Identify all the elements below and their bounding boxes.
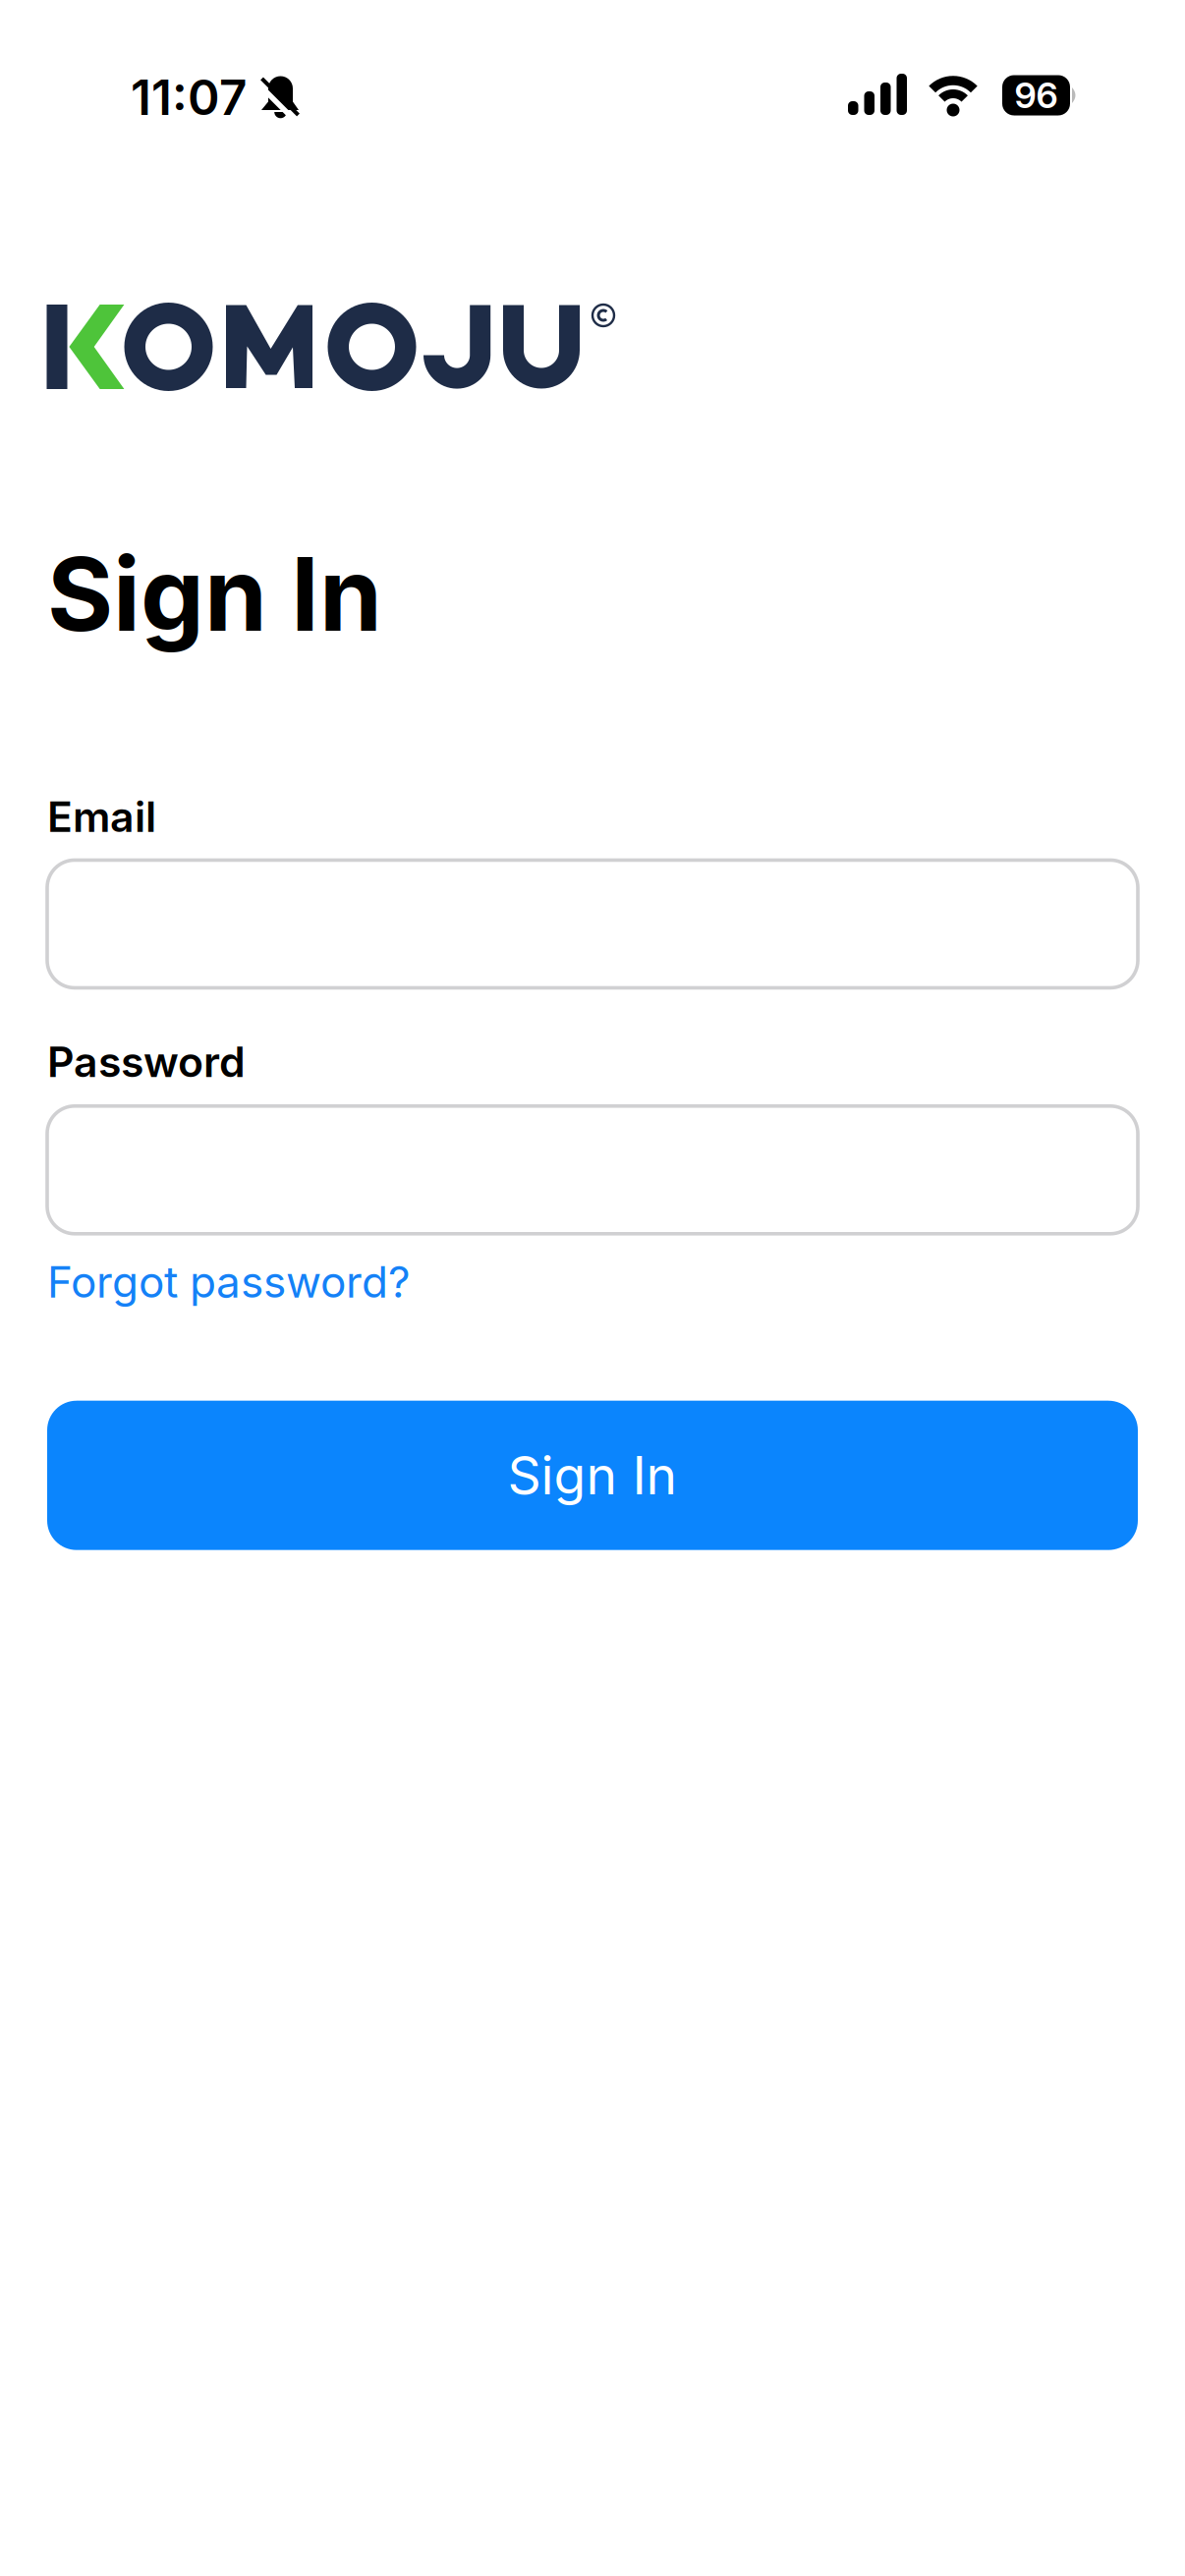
- staticText: 96: [1015, 74, 1058, 116]
- button[interactable]: Forgot password?: [47, 1256, 410, 1307]
- staticText: Forgot password?: [47, 1256, 410, 1307]
- staticText: Password: [47, 1037, 246, 1086]
- button[interactable]: Sign In: [47, 1401, 1138, 1550]
- staticText: Sign In: [47, 534, 382, 653]
- staticText: Sign In: [508, 1444, 677, 1506]
- staticText: 11:07: [131, 69, 247, 126]
- staticText: Email: [47, 792, 156, 841]
